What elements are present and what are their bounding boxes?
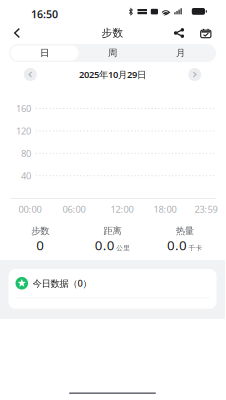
staticText: 月 <box>176 47 185 59</box>
staticText: 06:00 <box>62 203 85 215</box>
staticText: 23:59 <box>194 203 217 215</box>
staticText: 12:00 <box>110 203 133 215</box>
staticText: 00:00 <box>18 203 41 215</box>
staticText: 40 <box>21 169 31 182</box>
button[interactable]: Calendar <box>195 22 217 44</box>
button[interactable]: 月 <box>146 45 214 60</box>
staticText: 16:50 <box>31 7 58 21</box>
staticText: 160 <box>16 102 31 115</box>
staticText: 0.0 <box>167 236 187 254</box>
button[interactable]: 日 <box>10 45 78 60</box>
staticText: 0.0 <box>95 236 115 254</box>
button[interactable]: Previous day <box>23 67 38 82</box>
staticText: 18:00 <box>153 203 176 215</box>
staticText: 千卡 <box>189 244 203 252</box>
staticText: 0 <box>36 236 44 254</box>
staticText: 80 <box>21 147 31 159</box>
staticText: 热量 <box>176 225 194 237</box>
staticText: 120 <box>16 125 31 137</box>
button[interactable]: Back <box>6 22 28 44</box>
staticText: 日 <box>40 47 49 59</box>
button[interactable]: Next day <box>187 67 202 82</box>
button[interactable]: 今日数据（0） <box>8 269 216 297</box>
staticText: 2025年10月29日 <box>79 68 146 81</box>
staticText: 距离 <box>103 225 121 237</box>
staticText: 步数 <box>31 225 49 237</box>
button[interactable]: Share <box>168 22 190 44</box>
staticText: 周 <box>108 47 117 59</box>
staticText: 今日数据（0） <box>33 277 92 289</box>
staticText: 步数 <box>101 26 123 39</box>
staticText: 公里 <box>116 244 130 252</box>
button[interactable]: 周 <box>78 45 146 60</box>
